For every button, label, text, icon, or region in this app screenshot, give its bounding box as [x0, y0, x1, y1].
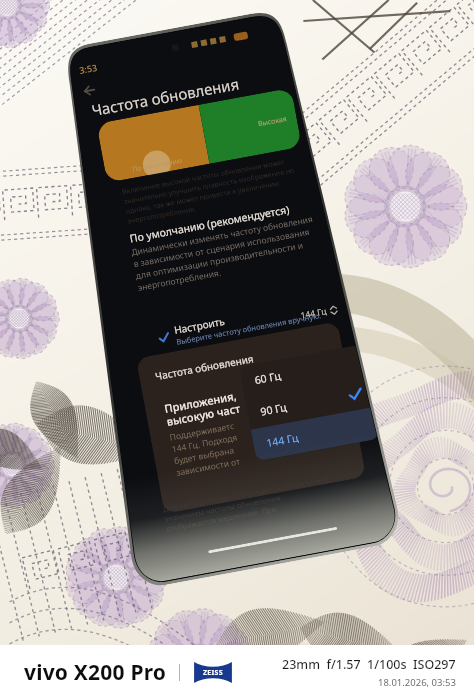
staticText: Для наглядной демонстрации разницы между: [162, 473, 332, 514]
staticText: vivo X200 Pro: [24, 658, 167, 687]
staticText: 18.01.2026, 03:53: [378, 676, 456, 689]
staticText: Высокая: [257, 114, 287, 129]
button[interactable]: 90 Гц: [245, 376, 374, 430]
staticText: значением частоты обновления.: [164, 492, 283, 524]
staticText: ZEISS: [203, 668, 223, 678]
staticText: 60 Гц: [253, 368, 283, 387]
staticText: 3:53: [78, 61, 98, 76]
button[interactable]: Back: [74, 75, 104, 106]
staticText: зависимости от: [175, 455, 241, 479]
staticText: будет выбрана: [173, 444, 235, 467]
staticText: энергопотребления.: [137, 267, 223, 294]
staticText: 144 Гц: [300, 305, 328, 322]
staticText: высокую част: [165, 400, 242, 429]
staticText: Включение высокой частоты обновления мож…: [121, 157, 285, 197]
staticText: Выберите частоту обновления вручную.: [175, 310, 322, 347]
staticText: значительно улучшить плавность изображен…: [123, 166, 295, 207]
button[interactable]: 60 Гц: [239, 344, 368, 398]
staticText: 90 Гц: [259, 400, 288, 419]
staticText: Поддерживаетс: [169, 420, 236, 444]
staticText: Частота обновления: [154, 351, 255, 383]
staticText: Настроить: [173, 314, 226, 337]
staticText: 23mm f/1.57 1/100s ISO297: [282, 656, 456, 673]
staticText: Динамически изменять частоту обновления: [130, 213, 314, 258]
staticText: Приложения,: [163, 388, 237, 416]
staticText: 144 Гц. Подходя: [171, 431, 239, 455]
staticText: в зависимости от сценария использования: [132, 226, 311, 270]
button[interactable]: 144 Гц: [251, 407, 379, 461]
staticText: По умолчанию: [131, 156, 183, 175]
staticText: отображается медленнее. При: [165, 503, 277, 534]
staticText: энергопотребления.: [127, 204, 197, 227]
staticText: для оптимизации производительности и: [135, 239, 304, 282]
staticText: По умолчанию (рекомендуется): [129, 202, 290, 245]
staticText: Частота обновления: [90, 73, 241, 120]
button[interactable]: Настроить: [156, 292, 347, 350]
staticText: 144 Гц: [265, 430, 300, 450]
staticText: однако, так же может привести к увеличен…: [125, 178, 281, 217]
